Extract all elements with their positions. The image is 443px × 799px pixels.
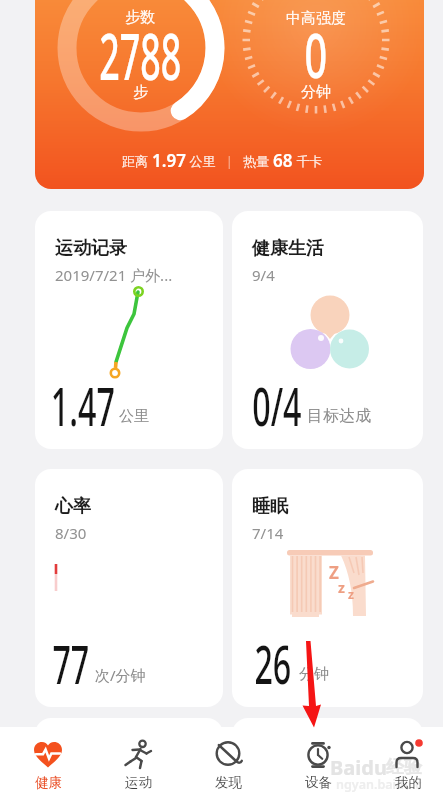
staticText: 0 bbox=[304, 12, 327, 86]
staticText: 68 bbox=[273, 149, 293, 172]
button[interactable]: 心率 bbox=[35, 469, 223, 707]
staticText: 公里 bbox=[186, 152, 216, 170]
staticText: 我的 bbox=[395, 774, 422, 791]
staticText: 次/分钟 bbox=[95, 665, 146, 685]
staticText: 步数 bbox=[125, 8, 155, 27]
staticText: 距离 bbox=[122, 152, 152, 170]
button[interactable]: 运动 bbox=[96, 727, 180, 799]
staticText: 健康 bbox=[35, 774, 62, 791]
staticText: 设备 bbox=[305, 774, 332, 791]
button[interactable]: 睡眠 bbox=[232, 469, 423, 707]
button[interactable]: 健康生活 bbox=[232, 211, 423, 449]
staticText: 1.97 bbox=[152, 149, 186, 172]
button[interactable]: 运动记录 bbox=[35, 211, 223, 449]
staticText: 中高强度 bbox=[286, 9, 346, 28]
staticText: 经验 bbox=[386, 756, 422, 779]
staticText: 运动记录 bbox=[55, 237, 127, 260]
staticText: Z bbox=[329, 561, 339, 584]
button[interactable]: 我的 bbox=[366, 727, 443, 799]
staticText: 千卡 bbox=[293, 152, 323, 170]
staticText: 分钟 bbox=[299, 665, 329, 684]
staticText: 心率 bbox=[55, 495, 91, 518]
button[interactable]: 设备 bbox=[276, 727, 360, 799]
staticText: ngyan.baidu.c bbox=[336, 776, 422, 793]
staticText: 26 bbox=[254, 628, 292, 699]
staticText: 公里 bbox=[119, 407, 149, 426]
staticText: | bbox=[226, 153, 233, 169]
staticText: 步 bbox=[133, 83, 148, 102]
staticText: 7/14 bbox=[252, 523, 284, 543]
staticText: z bbox=[338, 578, 345, 597]
staticText: 9/4 bbox=[252, 265, 275, 285]
staticText: 发现 bbox=[215, 774, 242, 791]
staticText: 77 bbox=[52, 628, 90, 699]
staticText: 8/30 bbox=[55, 523, 87, 543]
staticText: 1.47 bbox=[51, 370, 115, 441]
staticText: 2788 bbox=[99, 12, 182, 86]
staticText: 热量 bbox=[243, 152, 273, 170]
staticText: 分钟 bbox=[301, 83, 331, 102]
button[interactable] bbox=[35, 0, 424, 189]
staticText: 运动 bbox=[125, 774, 152, 791]
staticText: 健康生活 bbox=[252, 237, 324, 260]
staticText: 2019/7/21 户外... bbox=[55, 265, 173, 285]
staticText: Baidu bbox=[330, 754, 387, 781]
staticText: 目标达成 bbox=[307, 406, 371, 426]
staticText: 睡眠 bbox=[252, 495, 288, 518]
button[interactable]: 健康 bbox=[6, 727, 90, 799]
button[interactable]: 发现 bbox=[186, 727, 270, 799]
staticText: 0/4 bbox=[252, 370, 302, 441]
staticText: z bbox=[348, 586, 354, 602]
